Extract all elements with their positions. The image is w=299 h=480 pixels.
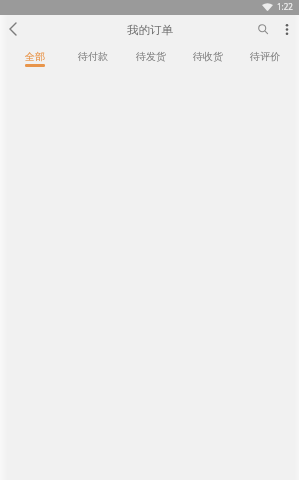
staticText: 待评价 — [250, 50, 280, 63]
staticText: 待收货 — [193, 50, 223, 63]
staticText: 全部 — [25, 50, 45, 63]
button[interactable]: More options — [275, 15, 299, 44]
button[interactable]: Back — [0, 14, 25, 43]
staticText: 1:22 — [277, 1, 293, 12]
staticText: 待付款 — [78, 50, 108, 63]
button[interactable]: 待付款 — [64, 44, 122, 70]
button[interactable]: Search — [252, 15, 275, 44]
button[interactable]: 全部 — [6, 44, 64, 70]
staticText: 待发货 — [136, 50, 166, 63]
button[interactable]: 待评价 — [236, 44, 293, 70]
staticText: 我的订单 — [127, 23, 173, 37]
button[interactable]: 待收货 — [179, 44, 236, 70]
button[interactable]: 待发货 — [122, 44, 179, 70]
